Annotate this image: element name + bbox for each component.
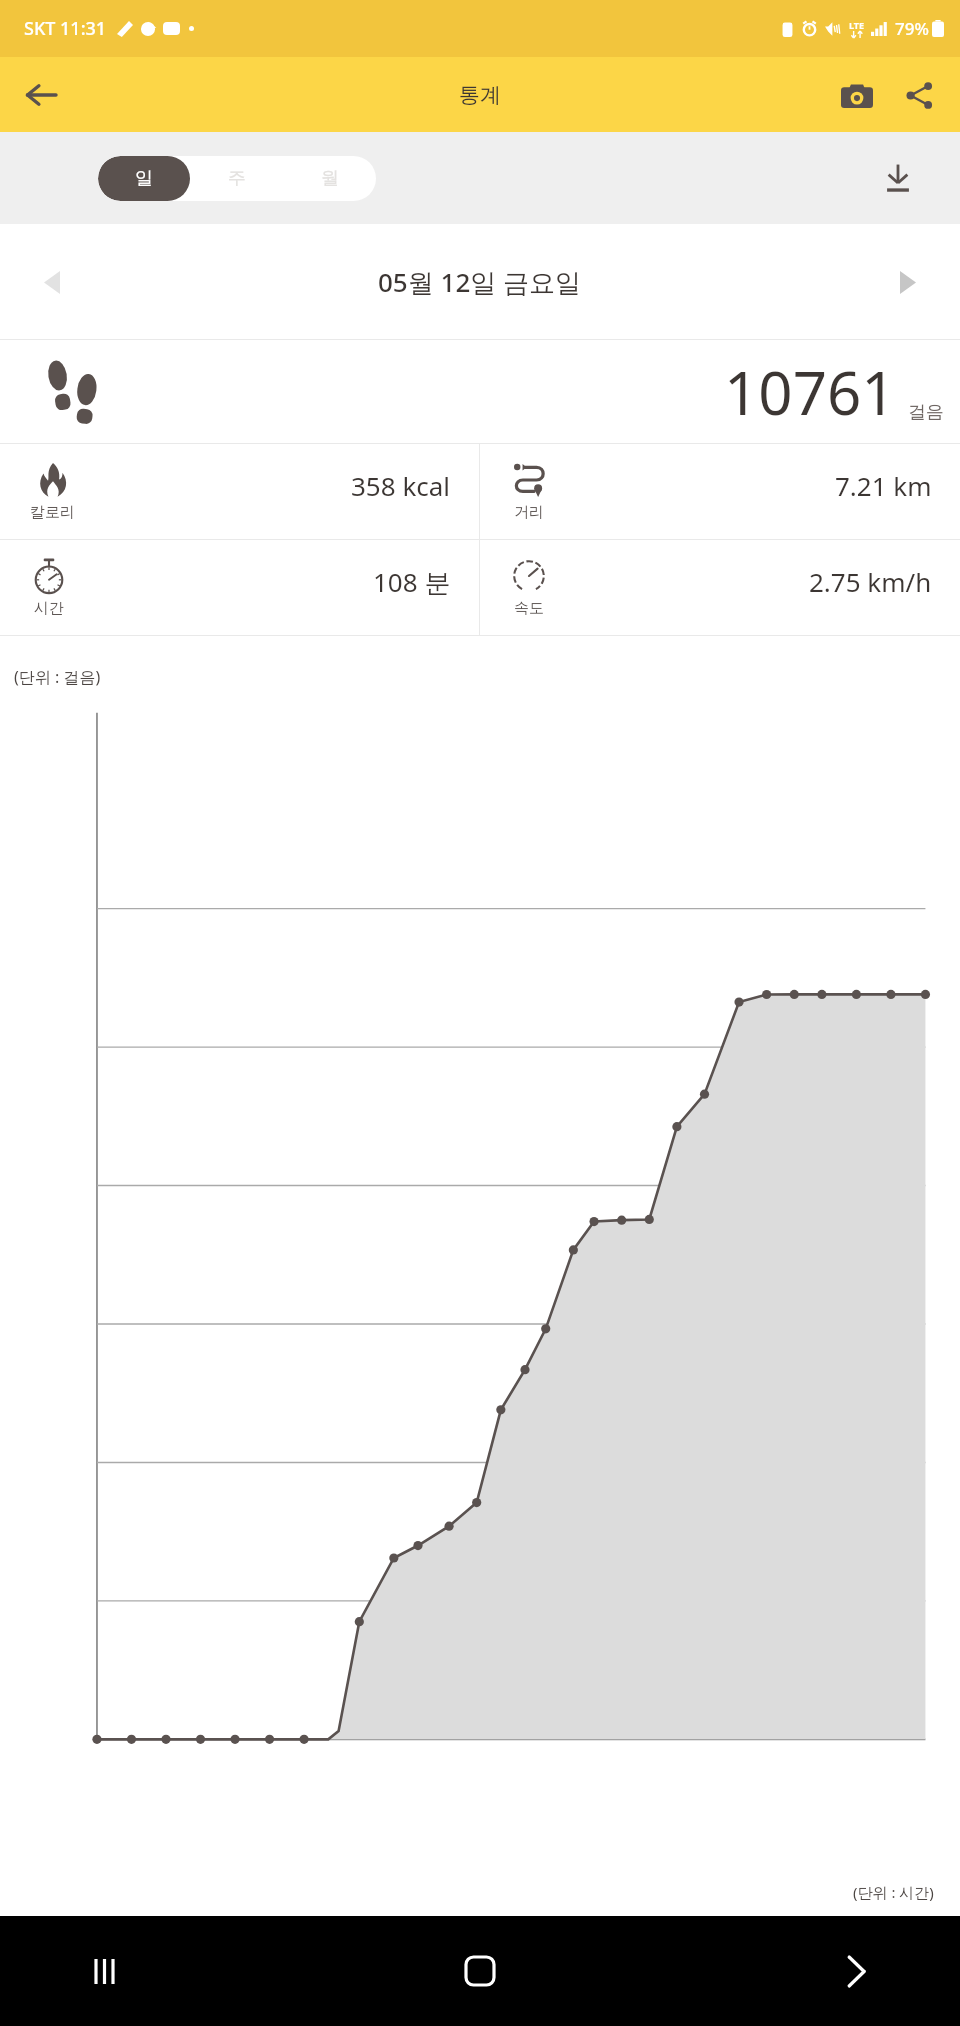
staticText: 칼로리 [30, 503, 75, 522]
button[interactable]: Home [434, 1925, 526, 2017]
button[interactable]: 시간 [0, 540, 479, 635]
staticText: 걸음 [908, 401, 944, 424]
staticText: (단위 : 걸음) [14, 666, 101, 688]
staticText: 월 [321, 167, 339, 190]
staticText: 일 [135, 167, 153, 190]
staticText: (단위 : 시간) [853, 1882, 934, 1902]
button[interactable]: 일 [98, 156, 190, 201]
staticText: 108 분 [373, 564, 451, 600]
button[interactable]: 칼로리 [0, 444, 479, 539]
staticText: 주 [228, 167, 246, 190]
button[interactable]: Back [810, 1925, 902, 2017]
button[interactable]: 속도 [480, 540, 960, 635]
staticText: 358 kcal [351, 468, 451, 503]
staticText: SKT 11:31 [24, 16, 107, 41]
staticText: 7.21 km [835, 468, 932, 503]
staticText: 10761 [724, 351, 896, 433]
staticText: 속도 [514, 599, 544, 618]
staticText: LTE [849, 19, 865, 31]
staticText: 거리 [514, 503, 544, 522]
button[interactable]: 주 [190, 156, 283, 201]
staticText: 통계 [459, 82, 501, 108]
button[interactable]: Previous day [20, 250, 84, 314]
staticText: 79% [895, 17, 929, 40]
button[interactable]: Camera [828, 66, 886, 124]
button[interactable]: 월 [283, 156, 376, 201]
button[interactable]: 거리 [480, 444, 960, 539]
staticText: 시간 [34, 599, 64, 618]
button[interactable]: Next day [876, 250, 940, 314]
button[interactable]: Share [890, 66, 948, 124]
staticText: 2.75 km/h [809, 564, 932, 599]
button[interactable]: Download [870, 150, 926, 206]
button[interactable]: Recents [58, 1925, 150, 2017]
staticText: 05월 12일 금요일 [378, 264, 582, 300]
button[interactable]: Back [12, 66, 70, 124]
